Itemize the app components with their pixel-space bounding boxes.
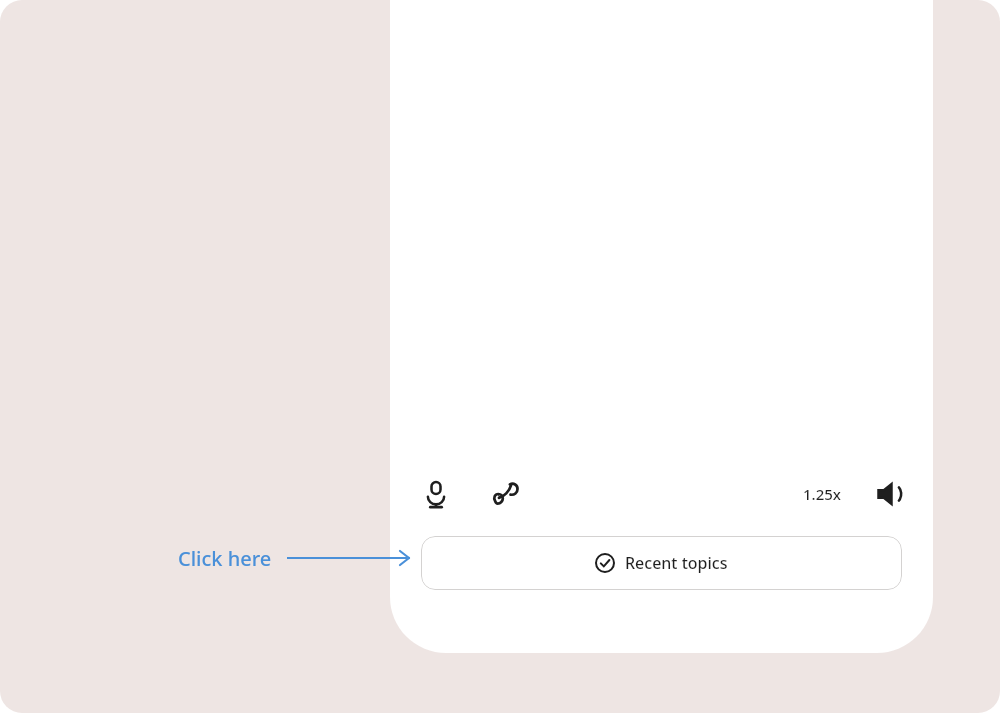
button[interactable]: Volume	[867, 470, 915, 518]
staticText: Click here	[178, 545, 272, 572]
button[interactable]: 1.25x	[795, 478, 849, 510]
staticText: Recent topics	[625, 552, 728, 574]
button[interactable]: Microphone	[412, 470, 460, 518]
button[interactable]: End call	[482, 470, 530, 518]
staticText: 1.25x	[803, 484, 841, 504]
button[interactable]: Recent topics	[421, 536, 902, 590]
